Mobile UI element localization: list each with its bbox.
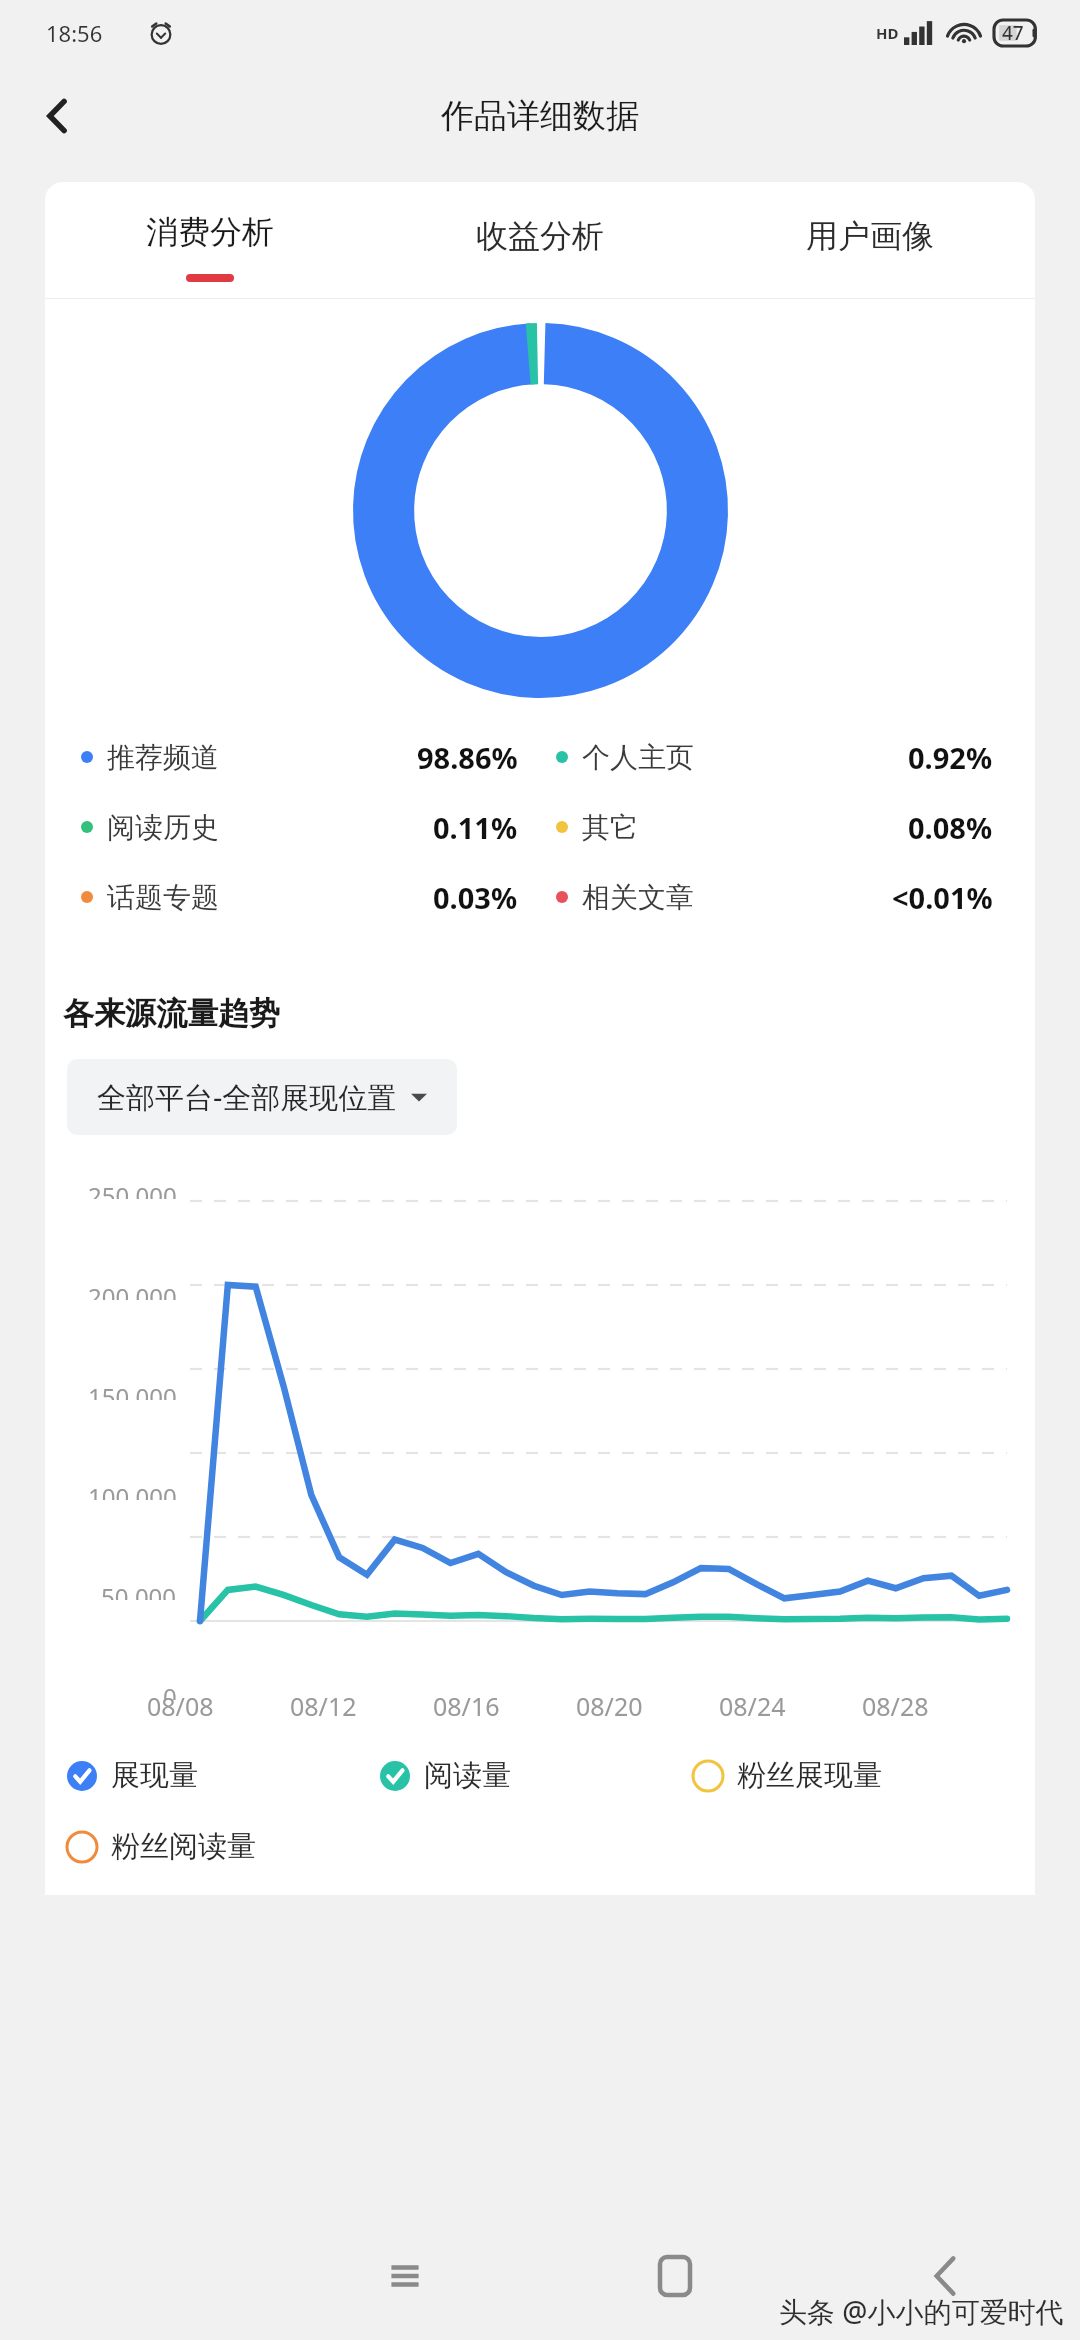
staticText: 47 (1002, 20, 1024, 46)
staticText: 08/24 (719, 1689, 786, 1723)
button[interactable]: Back (810, 2212, 1080, 2340)
button[interactable]: 全部平台-全部展现位置 (67, 1059, 457, 1135)
staticText: 作品详细数据 (441, 95, 639, 137)
staticText: 18:56 (46, 18, 103, 48)
staticText: 08/12 (290, 1689, 357, 1723)
staticText: 0 (163, 1680, 177, 1700)
staticText: 消费分析 (146, 212, 274, 252)
staticText: 0.92% (908, 738, 993, 777)
button[interactable]: Home (540, 2212, 810, 2340)
button[interactable]: 阅读量 (378, 1753, 691, 1798)
staticText: 各来源流量趋势 (63, 994, 280, 1033)
staticText: 08/08 (147, 1689, 214, 1723)
staticText: 话题专题 (107, 880, 219, 915)
staticText: 150,000 (88, 1380, 177, 1400)
staticText: 0.11% (433, 808, 518, 847)
staticText: 全部平台-全部展现位置 (97, 1077, 397, 1117)
staticText: 08/28 (862, 1689, 929, 1723)
staticText: 个人主页 (582, 740, 694, 775)
staticText: 250,000 (88, 1179, 177, 1199)
staticText: 08/20 (576, 1689, 643, 1723)
staticText: 推荐频道 (107, 740, 219, 775)
staticText: 收益分析 (476, 216, 604, 256)
button[interactable]: 展现量 (65, 1753, 378, 1798)
staticText: <0.01% (892, 878, 993, 917)
staticText: 0.08% (908, 808, 993, 847)
staticText: 展现量 (111, 1757, 198, 1794)
staticText: 用户画像 (806, 216, 934, 256)
button[interactable]: 收益分析 (375, 182, 705, 298)
staticText: 相关文章 (582, 880, 694, 915)
button[interactable]: 消费分析 (45, 182, 375, 298)
staticText: 粉丝阅读量 (111, 1828, 256, 1865)
staticText: 阅读量 (424, 1757, 511, 1794)
staticText: 0.03% (433, 878, 518, 917)
button[interactable]: Recents (270, 2212, 540, 2340)
staticText: 08/16 (433, 1689, 500, 1723)
staticText: 200,000 (88, 1280, 177, 1300)
button[interactable]: 粉丝阅读量 (65, 1824, 378, 1869)
button[interactable]: 粉丝展现量 (691, 1753, 1035, 1798)
staticText: HD (876, 23, 899, 43)
button[interactable]: Back (22, 80, 94, 152)
button[interactable]: 用户画像 (705, 182, 1035, 298)
staticText: 98.86% (417, 738, 518, 777)
staticText: 其它 (582, 810, 638, 845)
staticText: 阅读历史 (107, 810, 219, 845)
staticText: 粉丝展现量 (737, 1757, 882, 1794)
staticText: 头条 @小小的可爱时代 (779, 2292, 1064, 2330)
staticText: 100,000 (88, 1480, 177, 1500)
staticText: 50,000 (101, 1580, 177, 1600)
